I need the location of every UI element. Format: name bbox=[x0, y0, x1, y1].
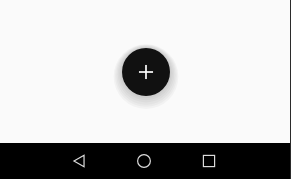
button[interactable]: Home bbox=[120, 143, 168, 179]
button[interactable]: Back bbox=[55, 143, 103, 179]
button[interactable]: Recent apps bbox=[185, 143, 233, 179]
button[interactable]: Add bbox=[122, 48, 170, 96]
